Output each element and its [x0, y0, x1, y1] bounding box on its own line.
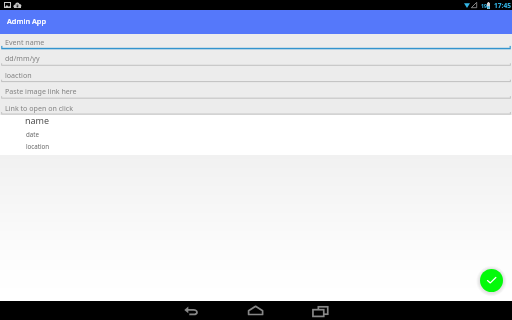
staticText: date: [26, 130, 39, 138]
staticText: 19: [481, 2, 488, 9]
button[interactable]: Recent apps: [306, 301, 336, 320]
button[interactable]: Home: [241, 301, 271, 320]
button[interactable]: loaction: [5, 70, 32, 80]
button[interactable]: Event name: [5, 37, 45, 47]
button[interactable]: Paste image link here: [5, 86, 77, 96]
button[interactable]: Back: [176, 301, 206, 320]
button[interactable]: Link to open on click: [5, 103, 73, 113]
staticText: 17:45: [494, 1, 511, 10]
button[interactable]: Save: [476, 265, 507, 296]
button[interactable]: name: [0, 115, 512, 155]
staticText: Admin App: [7, 16, 46, 26]
button[interactable]: dd/mm/yy: [5, 53, 40, 63]
staticText: location: [26, 142, 50, 150]
staticText: name: [25, 114, 50, 126]
